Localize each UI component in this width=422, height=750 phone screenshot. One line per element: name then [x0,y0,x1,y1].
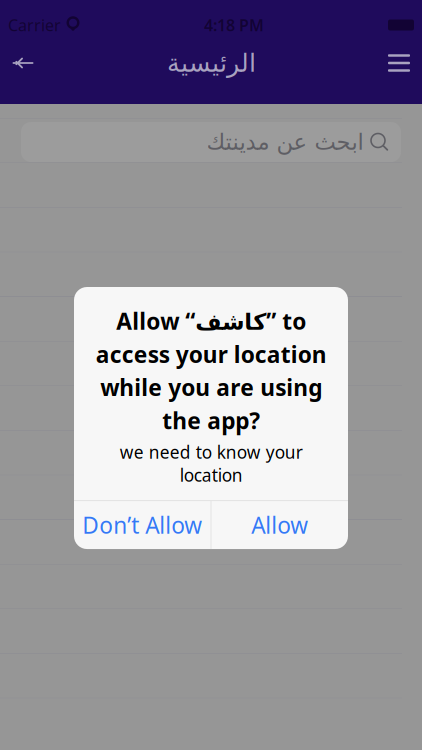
staticText: الرئيسية [166,49,255,77]
button[interactable]: Allow [211,501,348,549]
button[interactable]: Don’t Allow [74,501,211,549]
staticText: 4:18 PM [204,14,264,36]
staticText: we need to know your location [119,440,302,486]
staticText: Allow [251,510,308,540]
button[interactable]: ابحث عن مدينتك [21,122,401,162]
staticText: ابحث عن مدينتك [206,129,363,155]
button[interactable]: Back [0,41,46,85]
button[interactable]: Menu [376,41,422,85]
staticText: Carrier [8,14,61,36]
staticText: Don’t Allow [82,510,202,540]
staticText: Allow “كاشف” to access your location whi… [95,306,326,435]
